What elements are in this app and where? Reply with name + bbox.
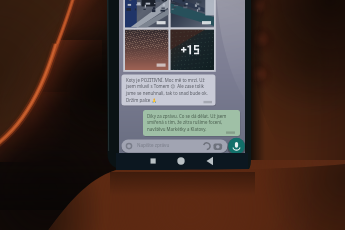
button[interactable]: Hand holding a phone showing a chat conv… <box>0 0 345 230</box>
staticText: Napište zprávu <box>137 142 170 148</box>
staticText: Díky za zprávu. Co se dá dělat. Už jsem … <box>147 113 227 132</box>
staticText: Koty je POZITIVNÍ. Moc mě to mrzí. Už js… <box>126 77 208 103</box>
